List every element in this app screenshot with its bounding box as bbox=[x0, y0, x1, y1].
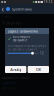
staticText: 12 bbox=[40, 51, 44, 55]
button[interactable]: Anuluj bbox=[5, 66, 26, 73]
staticText: Czyszczenie bbox=[2, 81, 17, 85]
staticText: 19:12 bbox=[44, 0, 53, 4]
staticText: Wyczyszczenie pamięci bbox=[2, 76, 30, 80]
staticText: Zapisz ustawienia bbox=[7, 28, 37, 34]
staticText: Anuluj bbox=[10, 67, 21, 72]
staticText: ✓ bbox=[7, 35, 11, 42]
staticText: ‹ bbox=[1, 4, 3, 14]
staticText: OK bbox=[36, 67, 41, 72]
staticText: Automatyczne zapisywanie bbox=[13, 35, 31, 42]
staticText: Tryb pracy bbox=[2, 20, 21, 25]
staticText: Systemowa bbox=[11, 6, 31, 12]
button[interactable]: Back bbox=[0, 4, 4, 14]
staticText: Pamięć podręczna bbox=[2, 71, 26, 74]
button[interactable]: OK bbox=[28, 66, 49, 73]
staticText: Automatyczna naprawa pamięci po zapisani… bbox=[7, 44, 46, 51]
